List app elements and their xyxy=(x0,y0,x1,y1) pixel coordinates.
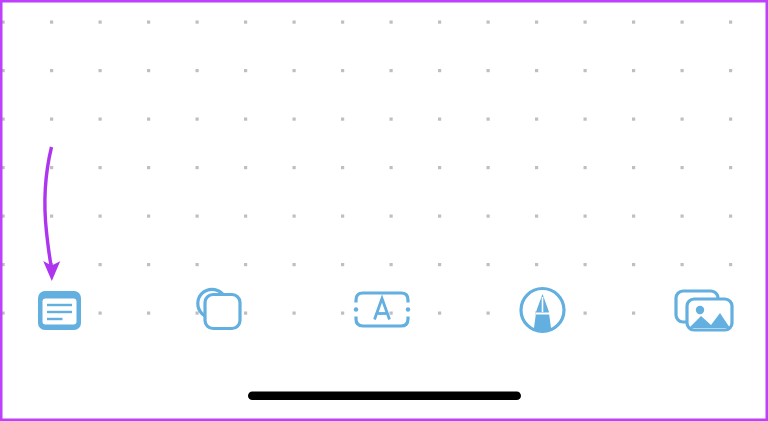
button[interactable]: Text box xyxy=(350,285,412,337)
button[interactable]: Photos xyxy=(672,286,736,338)
button[interactable]: Text card xyxy=(32,285,88,337)
button[interactable]: Shapes xyxy=(190,285,248,337)
button[interactable]: Draw xyxy=(516,286,570,338)
